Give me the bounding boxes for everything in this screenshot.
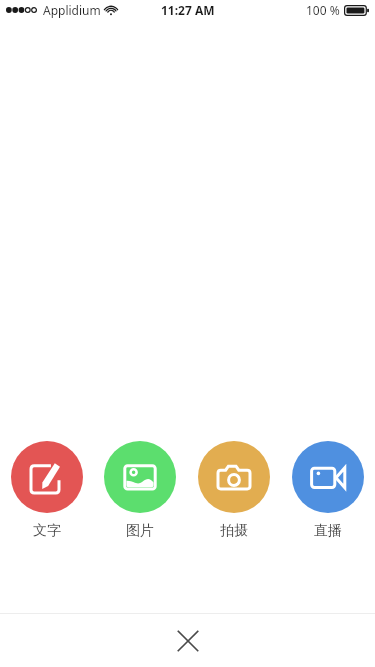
button[interactable]: 直播 — [281, 441, 375, 540]
button[interactable]: Close — [0, 614, 375, 667]
button[interactable]: 文字 — [0, 441, 93, 540]
staticText: Applidium — [43, 2, 101, 18]
staticText: 文字 — [33, 522, 61, 540]
button[interactable]: 图片 — [93, 441, 187, 540]
button[interactable]: 拍摄 — [187, 441, 281, 540]
staticText: 100 % — [306, 2, 340, 18]
staticText: 直播 — [314, 522, 342, 540]
staticText: 图片 — [126, 522, 154, 540]
staticText: 11:27 AM — [161, 2, 215, 18]
staticText: 拍摄 — [220, 522, 248, 540]
